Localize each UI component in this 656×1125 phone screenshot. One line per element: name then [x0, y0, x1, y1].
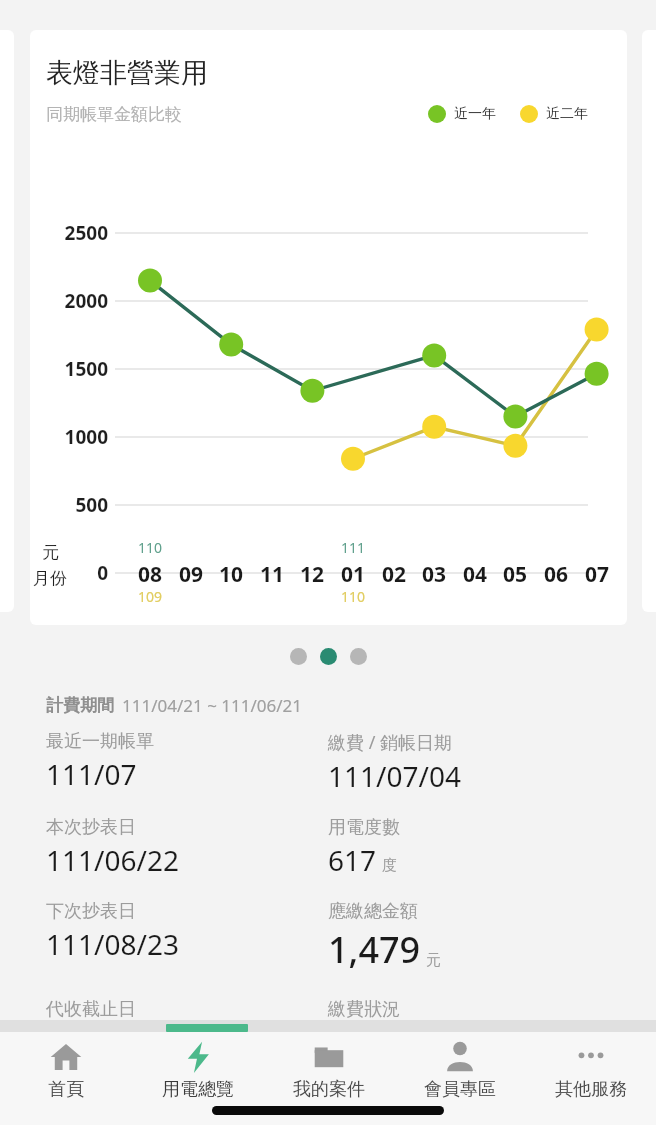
staticText: 09 [167, 560, 215, 589]
staticText: 05 [491, 560, 539, 589]
staticText: 110 [329, 587, 377, 606]
staticText: 最近一期帳單 [46, 730, 154, 753]
staticText: 同期帳單金額比較 [46, 104, 182, 125]
staticText: 111/06/22 [46, 841, 179, 879]
staticText: 下次抄表日 [46, 900, 136, 923]
staticText: 2500 [30, 220, 108, 246]
staticText: 會員專區 [424, 1078, 496, 1101]
staticText: 表燈非營業用 [46, 56, 208, 90]
staticText: 繳費 / 銷帳日期 [328, 730, 453, 755]
staticText: 111/07 [46, 755, 137, 793]
staticText: 111 [329, 538, 377, 557]
button[interactable]: 會員專區 [394, 1034, 525, 1101]
staticText: 0 [30, 560, 108, 586]
button[interactable] [320, 648, 337, 665]
staticText: 元 [426, 951, 441, 970]
staticText: 110 [126, 538, 174, 557]
staticText: 本次抄表日 [46, 816, 136, 839]
staticText: 08 [126, 560, 174, 589]
staticText: 元 [42, 542, 59, 563]
staticText: 03 [410, 560, 458, 589]
staticText: 111/08/23 [46, 925, 179, 963]
staticText: 度 [382, 856, 397, 875]
other: 首頁 [49, 1040, 83, 1074]
other: 其他服務 [574, 1040, 608, 1074]
staticText: 代收截止日 [46, 998, 136, 1021]
staticText: 111/07/04 [328, 757, 461, 795]
button[interactable]: 表燈非營業用 [30, 30, 627, 625]
button[interactable]: 我的案件 [263, 1034, 394, 1101]
staticText: 月份 [33, 568, 67, 589]
staticText: 500 [30, 492, 108, 518]
staticText: 計費期間 [46, 695, 114, 716]
staticText: 04 [451, 560, 499, 589]
staticText: 用電度數 [328, 816, 400, 839]
other: 我的案件 [312, 1040, 346, 1074]
staticText: 其他服務 [555, 1078, 627, 1101]
staticText: 12 [288, 560, 336, 589]
staticText: 1000 [30, 424, 108, 450]
staticText: 02 [370, 560, 418, 589]
staticText: 用電總覽 [162, 1078, 234, 1101]
staticText: 首頁 [48, 1078, 84, 1101]
staticText: 111/04/21 ~ 111/06/21 [122, 694, 302, 717]
button[interactable]: 其他服務 [525, 1034, 656, 1101]
staticText: 2000 [30, 288, 108, 314]
staticText: 近一年 [454, 105, 496, 123]
staticText: 07 [573, 560, 621, 589]
staticText: 617 [328, 841, 377, 879]
staticText: 1500 [30, 356, 108, 382]
staticText: 06 [532, 560, 580, 589]
other: 會員專區 [443, 1040, 477, 1074]
button[interactable]: 用電總覽 [132, 1034, 263, 1101]
button[interactable] [290, 648, 307, 665]
button[interactable] [350, 648, 367, 665]
staticText: 應繳總金額 [328, 900, 418, 923]
staticText: 11 [248, 560, 296, 589]
staticText: 1,479 [328, 925, 421, 974]
staticText: 我的案件 [293, 1078, 365, 1101]
staticText: 近二年 [546, 105, 588, 123]
staticText: 10 [207, 560, 255, 589]
button[interactable]: 首頁 [0, 1034, 132, 1101]
staticText: 109 [126, 587, 174, 606]
staticText: 繳費狀況 [328, 998, 400, 1021]
staticText: 01 [329, 560, 377, 589]
other: 用電總覽 [181, 1040, 215, 1074]
